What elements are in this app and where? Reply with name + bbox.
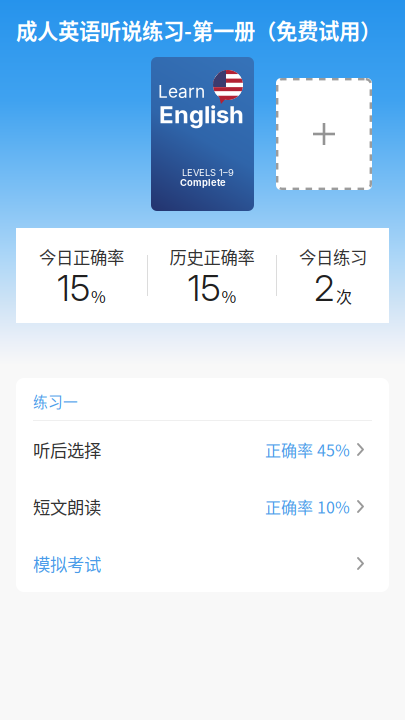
- staticText: %: [221, 284, 236, 308]
- staticText: 次: [336, 284, 352, 308]
- staticText: English: [159, 100, 244, 129]
- staticText: 短文朗读: [33, 494, 101, 519]
- staticText: Learn: [158, 81, 205, 102]
- staticText: Complete: [180, 177, 226, 188]
- button[interactable]: 短文朗读: [16, 478, 389, 535]
- staticText: 成人英语听说练习-第一册（免费试用）: [16, 15, 381, 45]
- staticText: 今日练习: [299, 244, 367, 269]
- staticText: 历史正确率: [169, 244, 254, 269]
- staticText: 听后选择: [33, 437, 101, 462]
- staticText: 2: [314, 266, 335, 310]
- button[interactable]: 听后选择: [16, 421, 389, 478]
- staticText: %: [91, 284, 106, 308]
- staticText: 15: [187, 266, 220, 310]
- button[interactable]: 模拟考试: [16, 535, 389, 592]
- staticText: LEVELS 1–9: [182, 167, 234, 178]
- staticText: 正确率 45%: [265, 438, 350, 461]
- staticText: 正确率 10%: [265, 495, 350, 518]
- staticText: 练习一: [33, 390, 78, 412]
- button[interactable]: Learn English 第一册: [151, 57, 254, 211]
- staticText: 今日正确率: [39, 244, 124, 269]
- button[interactable]: 添加教材: [276, 78, 372, 190]
- staticText: 15: [57, 266, 90, 310]
- staticText: 模拟考试: [33, 551, 101, 576]
